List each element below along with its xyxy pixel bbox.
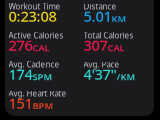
staticText: 151 <box>8 93 32 113</box>
staticText: 0:23:08 <box>8 6 56 26</box>
button[interactable]: Avg. Heart Rate <box>8 90 80 119</box>
staticText: CAL <box>32 41 49 54</box>
staticText: 276 <box>8 35 32 55</box>
staticText: 307 <box>83 35 107 55</box>
staticText: Avg. Pace <box>83 59 119 70</box>
staticText: 174 <box>8 64 32 84</box>
staticText: Total Calories <box>83 30 133 41</box>
button[interactable]: Avg. Pace <box>83 61 155 90</box>
staticText: Active Calories <box>8 30 63 41</box>
button[interactable]: Distance <box>83 3 155 32</box>
staticText: KM <box>111 12 126 25</box>
button[interactable]: Workout Time <box>8 3 80 32</box>
staticText: 5.01 <box>83 6 111 26</box>
staticText: /KM <box>116 70 135 83</box>
staticText: SPM <box>32 70 52 83</box>
button[interactable]: Avg. Cadence <box>8 61 80 90</box>
button[interactable]: Total Calories <box>83 32 155 61</box>
staticText: CAL <box>107 41 124 54</box>
staticText: Workout Time <box>8 1 60 12</box>
staticText: Avg. Heart Rate <box>8 88 66 99</box>
staticText: 4'37" <box>83 64 116 84</box>
staticText: Avg. Cadence <box>8 59 59 70</box>
staticText: Distance <box>83 1 116 12</box>
staticText: BPM <box>32 99 53 112</box>
button[interactable]: Active Calories <box>8 32 80 61</box>
